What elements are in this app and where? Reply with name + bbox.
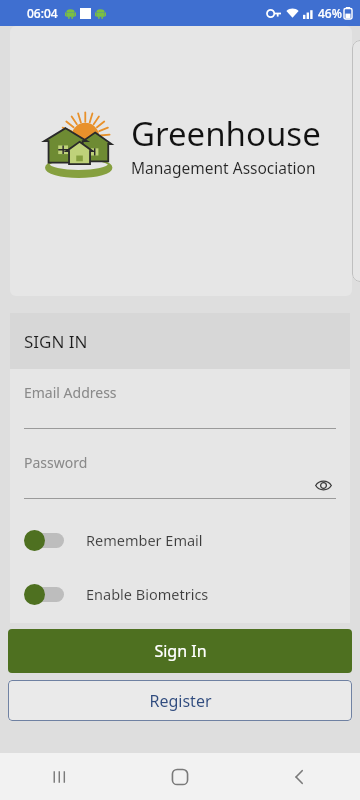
button[interactable]: Greenhouse xyxy=(10,26,352,296)
button[interactable]: Show password xyxy=(310,472,336,498)
staticText: 06:04 xyxy=(27,5,58,21)
button[interactable]: Home xyxy=(120,753,240,800)
staticText: Password xyxy=(24,453,88,472)
staticText: Greenhouse xyxy=(131,111,321,156)
button[interactable]: Remember Email xyxy=(24,529,336,551)
button[interactable]: Back xyxy=(240,753,360,800)
staticText: Remember Email xyxy=(86,530,203,550)
button[interactable]: Sign In xyxy=(8,629,352,673)
staticText: 46% xyxy=(318,5,342,21)
button[interactable]: Enable Biometrics xyxy=(24,583,336,605)
staticText: Register xyxy=(149,690,212,712)
staticText: Enable Biometrics xyxy=(86,584,209,604)
button[interactable]: Recent apps xyxy=(0,753,120,800)
staticText: Sign In xyxy=(154,640,207,662)
staticText: Management Association xyxy=(131,157,316,178)
button[interactable]: Register xyxy=(8,680,352,721)
staticText: Email Address xyxy=(24,383,117,402)
staticText: SIGN IN xyxy=(24,330,88,353)
